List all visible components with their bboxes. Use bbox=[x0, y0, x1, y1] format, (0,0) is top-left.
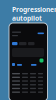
staticText: autopilot bbox=[12, 14, 42, 23]
staticText: Progressionen bbox=[12, 5, 56, 14]
